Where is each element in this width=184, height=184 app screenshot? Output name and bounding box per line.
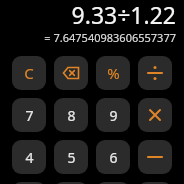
button[interactable]: 7	[12, 98, 46, 132]
button[interactable]: 2	[54, 182, 88, 184]
staticText: 9	[109, 106, 118, 125]
button[interactable]: 3	[96, 182, 130, 184]
button[interactable]: 6	[96, 140, 130, 174]
button[interactable]: Divide	[138, 56, 172, 90]
button[interactable]: Backspace	[54, 56, 88, 90]
staticText: 9.33÷1.22	[71, 0, 176, 26]
button[interactable]: C	[12, 56, 46, 90]
staticText: %	[107, 63, 120, 83]
button[interactable]: %	[96, 56, 130, 90]
button[interactable]: Multiply	[138, 98, 172, 132]
button[interactable]: 1	[12, 182, 46, 184]
staticText: 5	[67, 148, 76, 167]
staticText: 6	[109, 148, 118, 167]
button[interactable]: 5	[54, 140, 88, 174]
button[interactable]: 8	[54, 98, 88, 132]
staticText: 4	[25, 148, 34, 167]
staticText: C	[24, 63, 34, 83]
button[interactable]: Add	[138, 182, 172, 184]
button[interactable]: 9	[96, 98, 130, 132]
button[interactable]: 4	[12, 140, 46, 174]
staticText: = 7.647540983606557377	[44, 30, 176, 45]
button[interactable]: Subtract	[138, 140, 172, 174]
staticText: 8	[67, 106, 76, 125]
staticText: 7	[25, 106, 34, 125]
